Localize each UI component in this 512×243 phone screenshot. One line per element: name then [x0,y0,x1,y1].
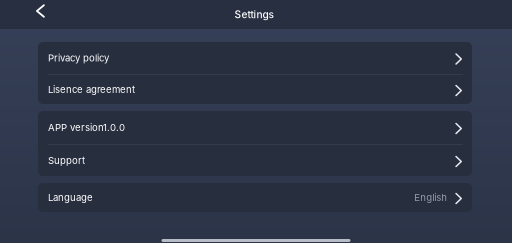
staticText: Privacy policy [48,52,109,64]
button[interactable]: Lisence agreement [38,75,472,104]
button[interactable]: APP version1.0.0 [38,111,472,144]
staticText: English [414,192,447,203]
staticText: Language [48,192,93,203]
staticText: APP version1.0.0 [48,122,125,133]
button[interactable]: Back [0,0,57,29]
button[interactable]: Privacy policy [38,42,472,74]
button[interactable]: Language [38,183,472,212]
staticText: Settings [234,8,273,21]
staticText: Lisence agreement [48,84,135,95]
button[interactable]: Support [38,145,472,176]
staticText: Support [48,155,85,166]
